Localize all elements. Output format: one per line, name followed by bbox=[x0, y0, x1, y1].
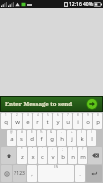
staticText: j bbox=[71, 135, 73, 143]
staticText: ' bbox=[42, 147, 43, 151]
staticText: Enter Message to send bbox=[5, 100, 73, 108]
button[interactable]: ) bbox=[87, 130, 96, 146]
staticText: 1 bbox=[5, 113, 7, 117]
staticText: ; bbox=[62, 147, 63, 151]
button[interactable]: 5 bbox=[43, 113, 52, 129]
button[interactable]: # bbox=[17, 130, 26, 146]
staticText: + bbox=[71, 130, 73, 134]
staticText: ? bbox=[82, 147, 84, 151]
button[interactable]: ; bbox=[58, 147, 67, 164]
staticText: c bbox=[41, 153, 44, 161]
staticText: * bbox=[21, 147, 23, 151]
staticText: a bbox=[10, 135, 14, 143]
staticText: ) bbox=[91, 130, 92, 134]
button[interactable]: 0 bbox=[93, 113, 102, 129]
staticText: l bbox=[91, 135, 93, 143]
staticText: , bbox=[31, 170, 33, 178]
button[interactable]: & bbox=[47, 130, 56, 146]
staticText: y bbox=[56, 118, 60, 126]
staticText: g bbox=[50, 135, 54, 143]
staticText: b bbox=[61, 153, 65, 161]
staticText: EN bbox=[54, 165, 58, 169]
button[interactable]: Enter bbox=[86, 165, 102, 182]
button[interactable]: @ bbox=[7, 130, 16, 146]
button[interactable]: . bbox=[75, 165, 85, 182]
staticText: 12:16 bbox=[69, 1, 82, 8]
button[interactable]: ' bbox=[38, 147, 47, 164]
staticText: - bbox=[61, 130, 62, 134]
staticText: 0 bbox=[97, 113, 99, 117]
staticText: & bbox=[50, 130, 53, 134]
staticText: e bbox=[26, 118, 30, 126]
button[interactable]: ( bbox=[77, 130, 86, 146]
button[interactable]: 1 bbox=[1, 113, 11, 129]
staticText: u bbox=[66, 118, 70, 126]
button[interactable]: 3 bbox=[23, 113, 32, 129]
staticText: m bbox=[80, 153, 86, 161]
staticText: @ bbox=[10, 130, 13, 134]
staticText: f bbox=[40, 135, 43, 143]
button[interactable]: Send bbox=[86, 98, 98, 110]
staticText: ?123 bbox=[14, 170, 25, 177]
button[interactable]: 4 bbox=[33, 113, 42, 129]
staticText: ( bbox=[81, 130, 82, 134]
staticText: q bbox=[4, 118, 8, 126]
staticText: t bbox=[46, 118, 49, 126]
button[interactable]: Enter Message to send bbox=[1, 97, 102, 111]
staticText: : bbox=[52, 147, 53, 151]
staticText: # bbox=[21, 130, 23, 134]
staticText: 8 bbox=[77, 113, 79, 117]
staticText: w bbox=[15, 118, 20, 126]
staticText: 3 bbox=[27, 113, 29, 117]
staticText: h bbox=[60, 135, 64, 143]
button[interactable]: 9 bbox=[83, 113, 92, 129]
staticText: " bbox=[32, 147, 34, 151]
button[interactable]: 7 bbox=[63, 113, 72, 129]
button[interactable]: 6 bbox=[53, 113, 62, 129]
button[interactable]: 8 bbox=[73, 113, 82, 129]
button[interactable]: Backspace bbox=[88, 147, 102, 164]
staticText: . bbox=[79, 170, 81, 178]
button[interactable]: ?123 bbox=[13, 165, 26, 182]
staticText: p bbox=[96, 118, 100, 126]
staticText: $ bbox=[31, 130, 33, 134]
staticText: d bbox=[30, 135, 34, 143]
staticText: 6 bbox=[57, 113, 59, 117]
button[interactable]: - bbox=[57, 130, 66, 146]
staticText: 9 bbox=[87, 113, 89, 117]
button[interactable]: + bbox=[67, 130, 76, 146]
staticText: r bbox=[36, 118, 39, 126]
staticText: 5 bbox=[47, 113, 49, 117]
staticText: k bbox=[80, 135, 84, 143]
button[interactable]: Space bbox=[38, 165, 74, 182]
staticText: i bbox=[77, 118, 79, 126]
staticText: 40% bbox=[83, 1, 93, 8]
button[interactable]: Shift bbox=[1, 147, 16, 164]
button[interactable]: $ bbox=[27, 130, 36, 146]
button[interactable]: Emoji bbox=[1, 165, 12, 182]
button[interactable]: 2 bbox=[12, 113, 22, 129]
staticText: 7 bbox=[67, 113, 69, 117]
button[interactable]: " bbox=[28, 147, 37, 164]
staticText: % bbox=[40, 130, 43, 134]
button[interactable]: , bbox=[27, 165, 37, 182]
button[interactable]: : bbox=[48, 147, 57, 164]
button[interactable]: * bbox=[17, 147, 27, 164]
button[interactable]: % bbox=[37, 130, 46, 146]
staticText: x bbox=[31, 153, 35, 161]
button[interactable]: ? bbox=[78, 147, 87, 164]
staticText: ! bbox=[72, 147, 73, 151]
staticText: z bbox=[21, 153, 24, 161]
button[interactable]: ! bbox=[68, 147, 77, 164]
staticText: o bbox=[86, 118, 90, 126]
staticText: v bbox=[51, 153, 55, 161]
staticText: 2 bbox=[16, 113, 18, 117]
staticText: s bbox=[20, 135, 23, 143]
staticText: 4 bbox=[37, 113, 39, 117]
staticText: n bbox=[71, 153, 75, 161]
